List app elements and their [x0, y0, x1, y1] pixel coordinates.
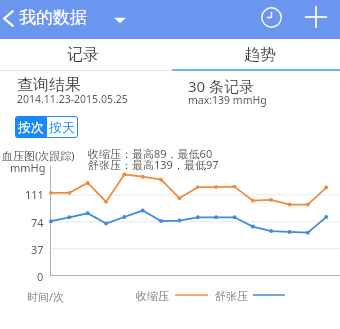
button[interactable]: Add [304, 5, 328, 29]
button[interactable]: 我的数据 [19, 7, 87, 29]
staticText: 趋势 [244, 45, 276, 65]
button[interactable]: 趋势 [176, 39, 340, 70]
staticText: 按次 [18, 119, 44, 135]
staticText: max:139 mmHg [188, 93, 267, 107]
staticText: 0 [37, 269, 44, 284]
staticText: 舒张压 [215, 289, 248, 303]
staticText: 时间/次 [27, 289, 65, 304]
staticText: 舒张压：最高139，最低97 [88, 157, 219, 172]
staticText: 111 [25, 187, 44, 202]
staticText: 37 [31, 242, 44, 257]
button[interactable]: History [259, 5, 283, 29]
staticText: 74 [31, 215, 44, 230]
button[interactable]: 按次 [15, 116, 46, 138]
staticText: 我的数据 [19, 7, 87, 28]
staticText: 2014.11.23-2015.05.25 [17, 92, 128, 106]
staticText: 30 条记录 [188, 76, 255, 96]
staticText: 收缩压 [136, 289, 169, 303]
button[interactable]: 记录 [0, 39, 166, 70]
button[interactable]: 按天 [46, 116, 78, 138]
staticText: 血压图(次跟踪) [2, 148, 75, 163]
staticText: 按天 [49, 119, 75, 135]
button[interactable]: Dropdown [106, 10, 134, 30]
button[interactable]: Back [0, 6, 18, 30]
staticText: 收缩压：最高89，最低60 [88, 146, 213, 161]
staticText: mmHg [10, 160, 46, 175]
staticText: 查询结果 [17, 75, 81, 95]
staticText: 记录 [67, 45, 99, 65]
